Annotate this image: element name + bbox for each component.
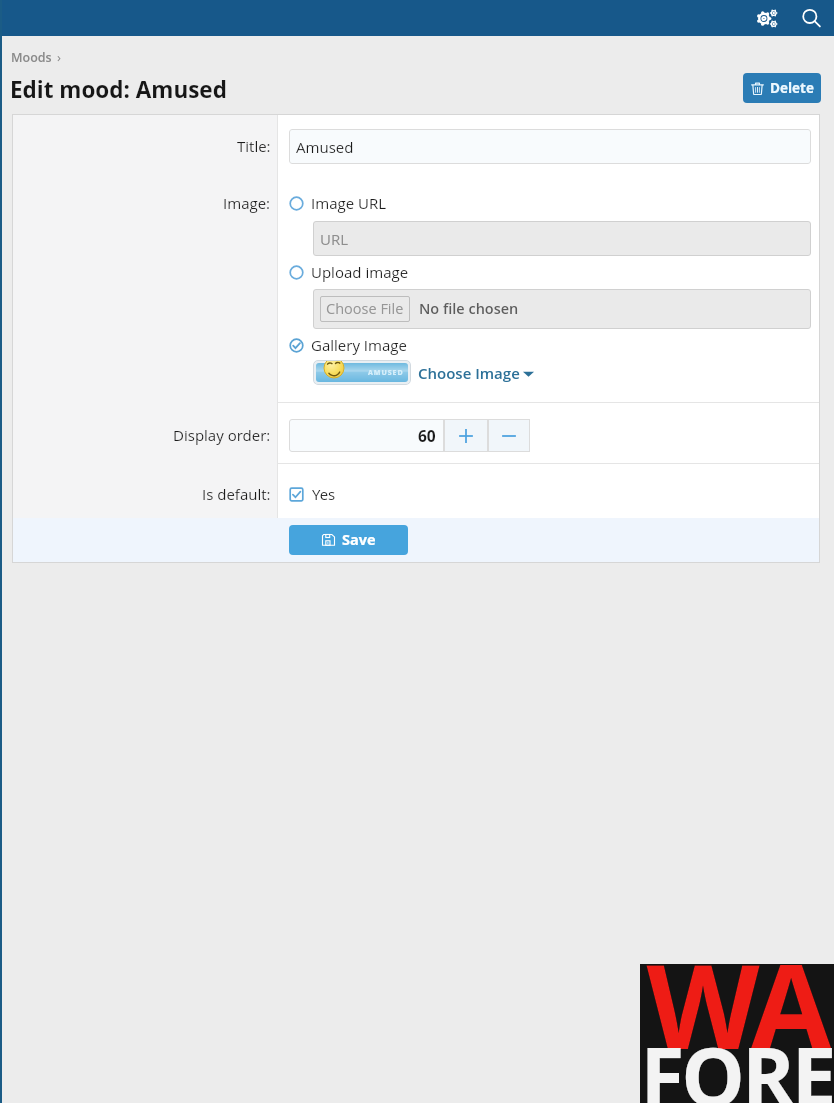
button[interactable]: Choose Image [418, 363, 534, 383]
staticText: Edit mood: Amused [10, 74, 227, 105]
button[interactable]: AMUSED [313, 360, 411, 385]
button[interactable]: Upload image [289, 262, 409, 282]
button[interactable]: Search [794, 1, 828, 35]
staticText: URL [320, 229, 348, 249]
staticText: Is default: [202, 484, 271, 504]
staticText: Image: [223, 193, 271, 213]
button[interactable]: 60 [289, 419, 444, 452]
staticText: › [57, 48, 61, 66]
staticText: Gallery Image [311, 335, 407, 355]
button[interactable]: Save [289, 525, 408, 555]
button[interactable]: Amused [289, 129, 811, 164]
staticText: WAR [640, 924, 834, 1063]
staticText: Image URL [311, 193, 386, 213]
button[interactable]: Image URL [289, 193, 386, 213]
staticText: Moods [11, 49, 52, 66]
staticText: Title: [237, 136, 271, 156]
button[interactable]: Delete [743, 73, 821, 103]
button[interactable]: Yes [289, 484, 336, 504]
button[interactable]: Choose File [320, 296, 410, 322]
staticText: Choose Image [418, 363, 520, 383]
button[interactable]: Gallery Image [289, 335, 407, 355]
staticText: Yes [312, 484, 336, 504]
staticText: Upload image [311, 262, 409, 282]
button[interactable]: Moods [11, 49, 52, 66]
button[interactable]: Increase [444, 419, 488, 452]
staticText: No file chosen [419, 299, 519, 319]
staticText: Save [342, 530, 376, 550]
button[interactable]: Decrease [488, 419, 530, 452]
staticText: FOREVER [640, 1020, 834, 1103]
staticText: Display order: [173, 425, 271, 445]
staticText: 60 [418, 425, 436, 446]
staticText: Amused [296, 137, 354, 157]
button[interactable]: Settings [750, 1, 784, 35]
staticText: AMUSED [368, 368, 404, 378]
staticText: Delete [770, 79, 814, 97]
staticText: Choose File [326, 299, 404, 319]
